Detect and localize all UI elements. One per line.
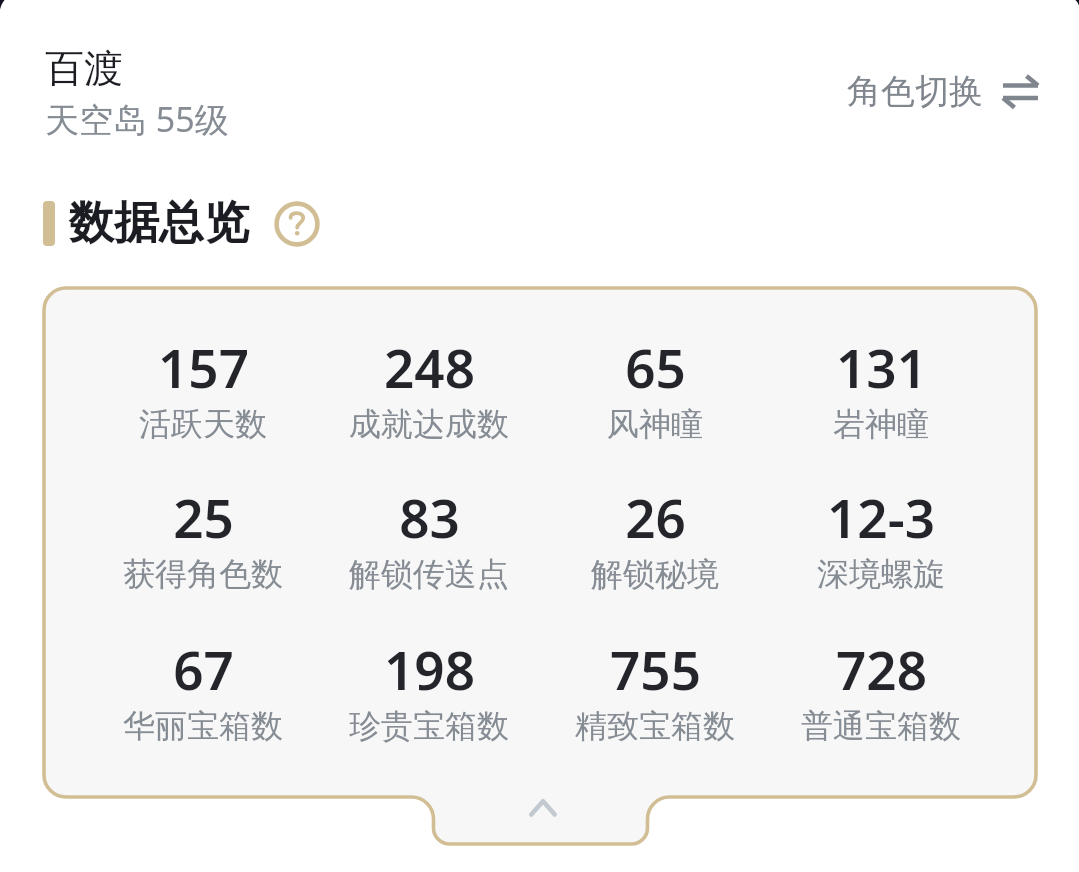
staticText: 65 bbox=[625, 331, 686, 403]
staticText: 角色切换 bbox=[847, 70, 983, 113]
button[interactable]: 角色切换 bbox=[847, 70, 1038, 113]
button[interactable]: 728 bbox=[768, 633, 994, 745]
staticText: 华丽宝箱数 bbox=[123, 706, 283, 746]
staticText: 26 bbox=[625, 481, 686, 553]
button[interactable]: 26 bbox=[542, 481, 768, 593]
staticText: 岩神瞳 bbox=[833, 404, 929, 444]
staticText: 活跃天数 bbox=[139, 404, 267, 444]
button[interactable]: 248 bbox=[316, 331, 542, 443]
button[interactable]: Help bbox=[274, 201, 320, 247]
staticText: 83 bbox=[399, 481, 460, 553]
button[interactable]: 12-3 bbox=[768, 481, 994, 593]
staticText: 百渡 bbox=[45, 44, 123, 93]
staticText: 深境螺旋 bbox=[817, 554, 945, 594]
button[interactable]: 198 bbox=[316, 633, 542, 745]
staticText: 天空岛 55级 bbox=[45, 96, 229, 139]
staticText: 12-3 bbox=[827, 481, 935, 553]
staticText: 风神瞳 bbox=[607, 404, 703, 444]
staticText: 获得角色数 bbox=[123, 554, 283, 594]
staticText: 成就达成数 bbox=[349, 404, 509, 444]
staticText: 248 bbox=[384, 331, 475, 403]
staticText: 精致宝箱数 bbox=[575, 706, 735, 746]
button[interactable]: 157 bbox=[90, 331, 316, 443]
staticText: 解锁秘境 bbox=[591, 554, 719, 594]
button[interactable]: 83 bbox=[316, 481, 542, 593]
staticText: 珍贵宝箱数 bbox=[349, 706, 509, 746]
staticText: 131 bbox=[836, 331, 927, 403]
staticText: 198 bbox=[384, 633, 475, 705]
button[interactable]: 131 bbox=[768, 331, 994, 443]
staticText: 数据总览 bbox=[69, 195, 249, 252]
staticText: 157 bbox=[158, 331, 249, 403]
other: Switch character bbox=[1003, 76, 1038, 107]
button[interactable]: 67 bbox=[90, 633, 316, 745]
button[interactable]: Collapse bbox=[485, 787, 595, 837]
staticText: 25 bbox=[173, 481, 234, 553]
staticText: 普通宝箱数 bbox=[801, 706, 961, 746]
button[interactable]: 25 bbox=[90, 481, 316, 593]
staticText: 728 bbox=[836, 633, 927, 705]
button[interactable]: 百渡 bbox=[45, 44, 275, 139]
staticText: 解锁传送点 bbox=[349, 554, 509, 594]
staticText: 67 bbox=[173, 633, 234, 705]
staticText: 755 bbox=[610, 633, 701, 705]
button[interactable]: 755 bbox=[542, 633, 768, 745]
button[interactable]: 65 bbox=[542, 331, 768, 443]
